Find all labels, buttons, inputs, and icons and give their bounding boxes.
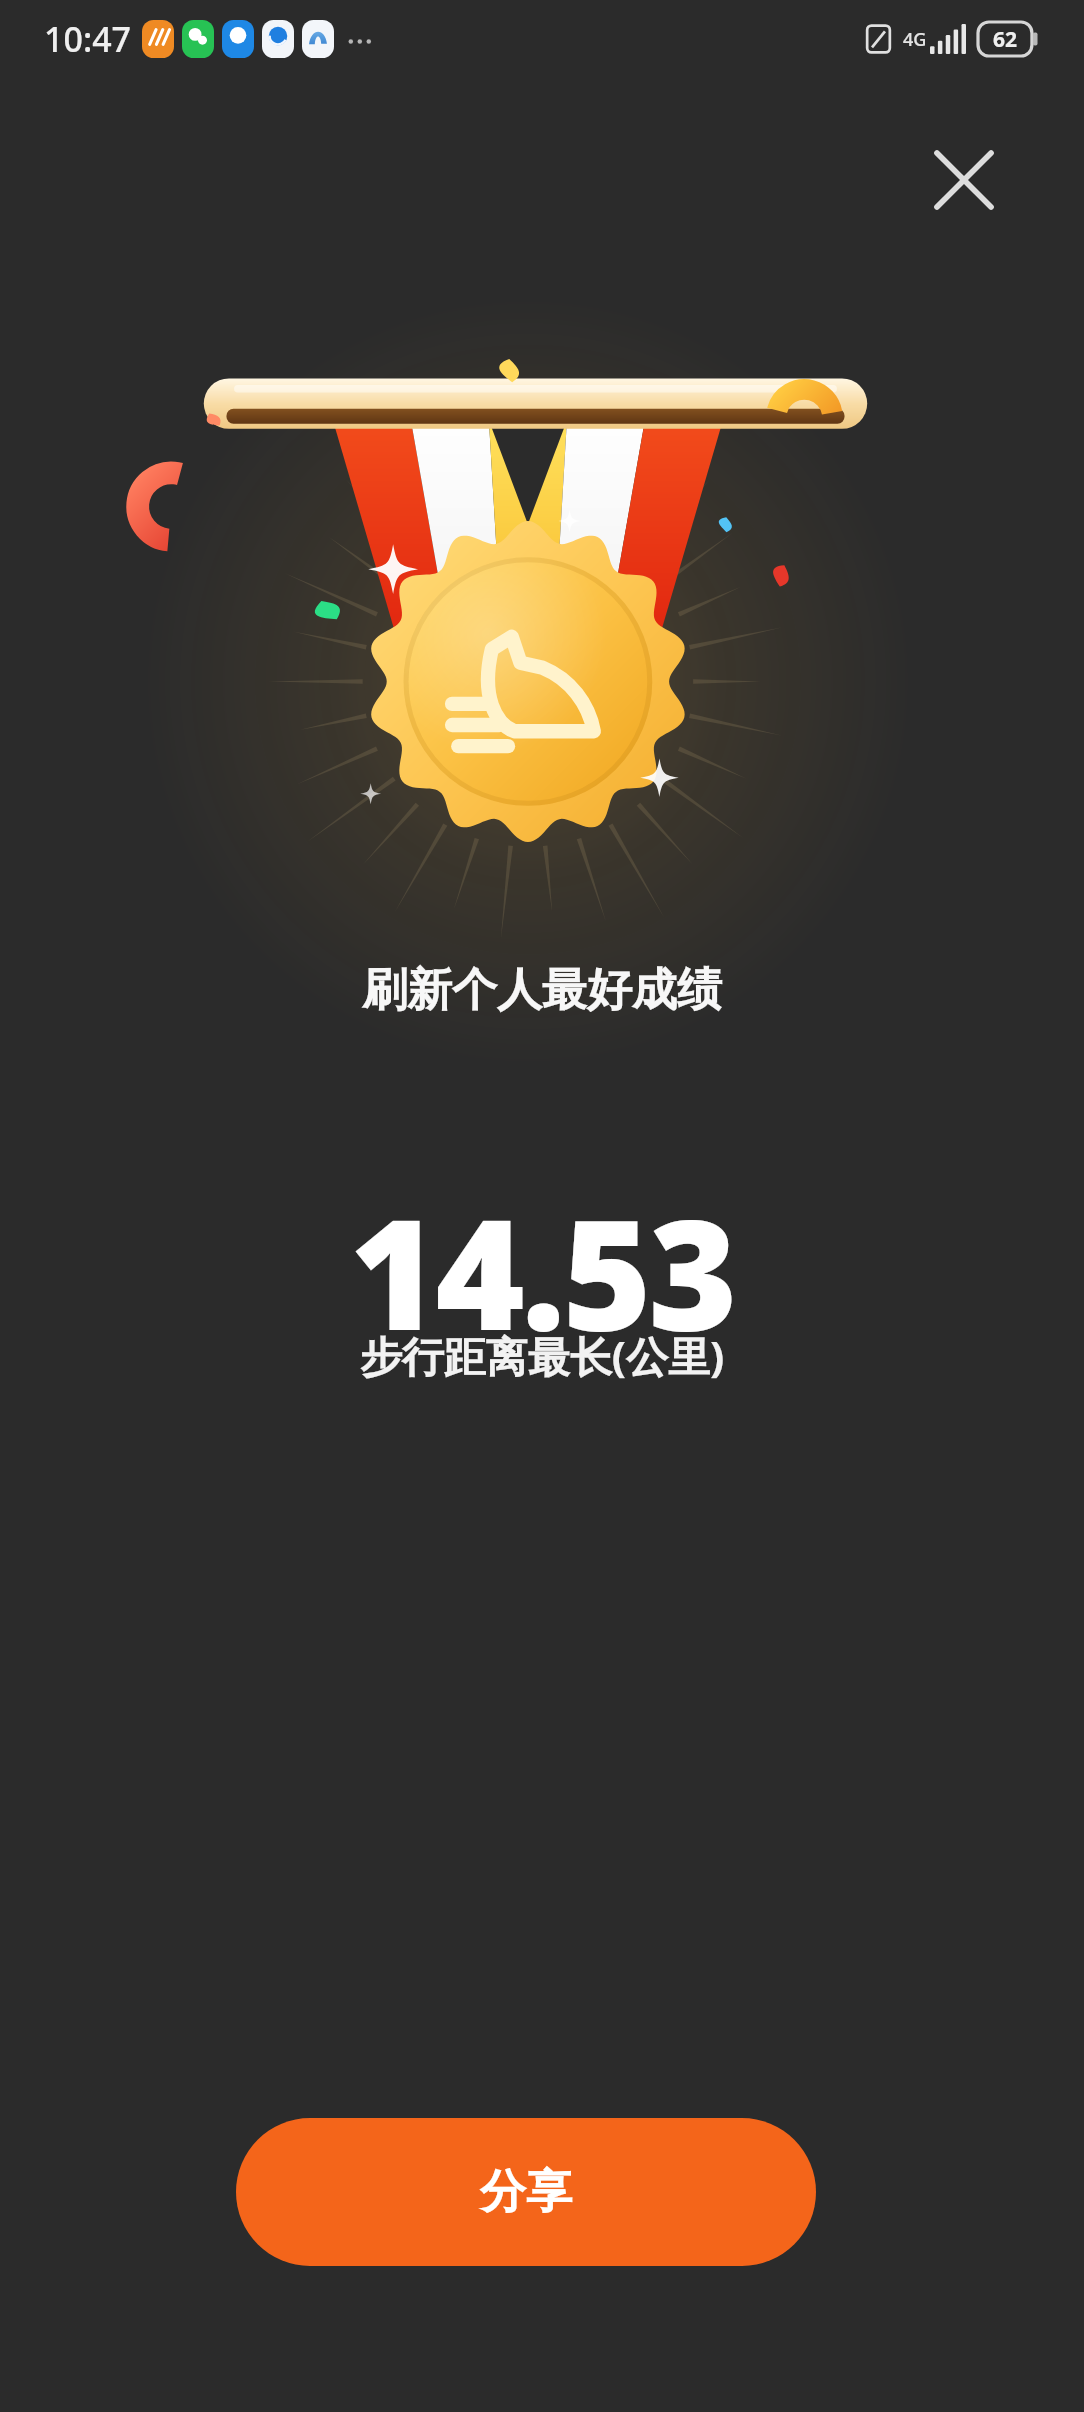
staticText: 4G [903,27,927,52]
staticText: 10:47 [44,16,132,62]
staticText: 刷新个人最好成绩 [0,962,1084,1019]
button[interactable]: 分享 [236,2118,816,2266]
button[interactable]: Close [920,136,1008,224]
staticText: 62 [993,25,1018,54]
staticText: 分享 [480,2163,572,2221]
staticText: 14.53 [0,1168,1084,1375]
staticText: 步行距离最长(公里) [0,1327,1084,1384]
